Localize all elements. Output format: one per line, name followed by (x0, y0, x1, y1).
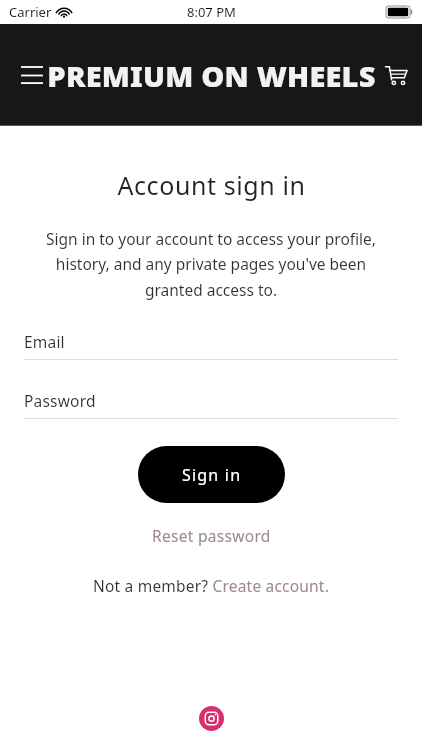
button[interactable]: Shopping cart (374, 53, 418, 97)
button[interactable]: Reset password (144, 521, 279, 550)
staticText: Not a member? Create account. (93, 575, 330, 596)
staticText: PREMIUM ON WHEELS (47, 56, 376, 95)
staticText: Email (24, 331, 65, 352)
staticText: Reset password (152, 525, 271, 546)
button[interactable]: PREMIUM ON WHEELS (47, 56, 376, 95)
button[interactable]: Password (24, 390, 398, 419)
button[interactable]: Not a member? Create account. (85, 571, 338, 600)
button[interactable]: Instagram (191, 698, 231, 738)
staticText: Carrier (9, 3, 52, 21)
button[interactable]: Open menu (10, 53, 54, 97)
staticText: Password (24, 390, 96, 411)
button[interactable]: Sign in (138, 446, 285, 503)
button[interactable]: Email (24, 331, 398, 360)
staticText: Sign in to your account to access your p… (26, 228, 396, 301)
staticText: Account sign in (117, 168, 306, 202)
staticText: 8:07 PM (187, 3, 236, 21)
staticText: Sign in (182, 464, 242, 486)
